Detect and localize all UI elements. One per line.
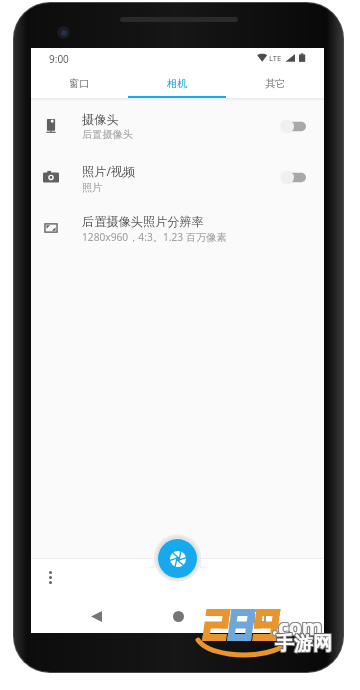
button[interactable]: Toggle 照片/视频 bbox=[271, 153, 315, 201]
button[interactable]: More options bbox=[37, 564, 63, 590]
button[interactable]: 相机 bbox=[128, 70, 226, 98]
button[interactable]: 摄像头 bbox=[31, 102, 324, 150]
staticText: 9:00 bbox=[49, 52, 69, 66]
staticText: 摄像头 bbox=[82, 112, 119, 127]
staticText: 手游网 bbox=[276, 631, 333, 655]
staticText: 手游网 bbox=[275, 631, 332, 655]
staticText: 照片/视频 bbox=[82, 163, 136, 180]
button[interactable]: 其它 bbox=[226, 70, 324, 98]
button[interactable]: Home bbox=[167, 605, 189, 627]
staticText: .com bbox=[271, 612, 322, 641]
button[interactable]: 照片/视频 bbox=[31, 153, 324, 201]
button[interactable]: Capture photo bbox=[158, 539, 197, 578]
staticText: 后置摄像头 bbox=[82, 128, 133, 141]
button[interactable]: Toggle 摄像头 bbox=[271, 102, 315, 150]
button[interactable]: 后置摄像头照片分辨率 bbox=[31, 204, 324, 252]
staticText: 手游网 bbox=[275, 633, 332, 657]
button[interactable]: Back bbox=[85, 605, 107, 627]
staticText: 手游网 bbox=[274, 633, 331, 657]
staticText: 手游网 bbox=[275, 632, 332, 656]
button[interactable]: Recent apps bbox=[248, 605, 270, 627]
staticText: .com bbox=[272, 613, 323, 642]
staticText: 窗口 bbox=[69, 77, 90, 90]
staticText: .com bbox=[272, 614, 323, 643]
staticText: 手游网 bbox=[274, 631, 331, 655]
staticText: .com bbox=[273, 613, 324, 642]
staticText: .com bbox=[271, 613, 322, 642]
staticText: .com bbox=[272, 612, 323, 641]
staticText: 手游网 bbox=[274, 632, 331, 656]
staticText: 相机 bbox=[167, 77, 188, 90]
staticText: .com bbox=[273, 614, 324, 643]
staticText: .com bbox=[271, 614, 322, 643]
staticText: LTE bbox=[269, 53, 282, 63]
staticText: 手游网 bbox=[276, 633, 333, 657]
button[interactable]: 窗口 bbox=[31, 70, 128, 98]
staticText: 后置摄像头照片分辨率 bbox=[82, 214, 204, 229]
staticText: 其它 bbox=[265, 77, 286, 90]
staticText: 1280x960，4:3。1.23 百万像素 bbox=[82, 230, 227, 244]
staticText: .com bbox=[273, 612, 324, 641]
staticText: 照片 bbox=[82, 181, 103, 194]
staticText: 手游网 bbox=[276, 632, 333, 656]
